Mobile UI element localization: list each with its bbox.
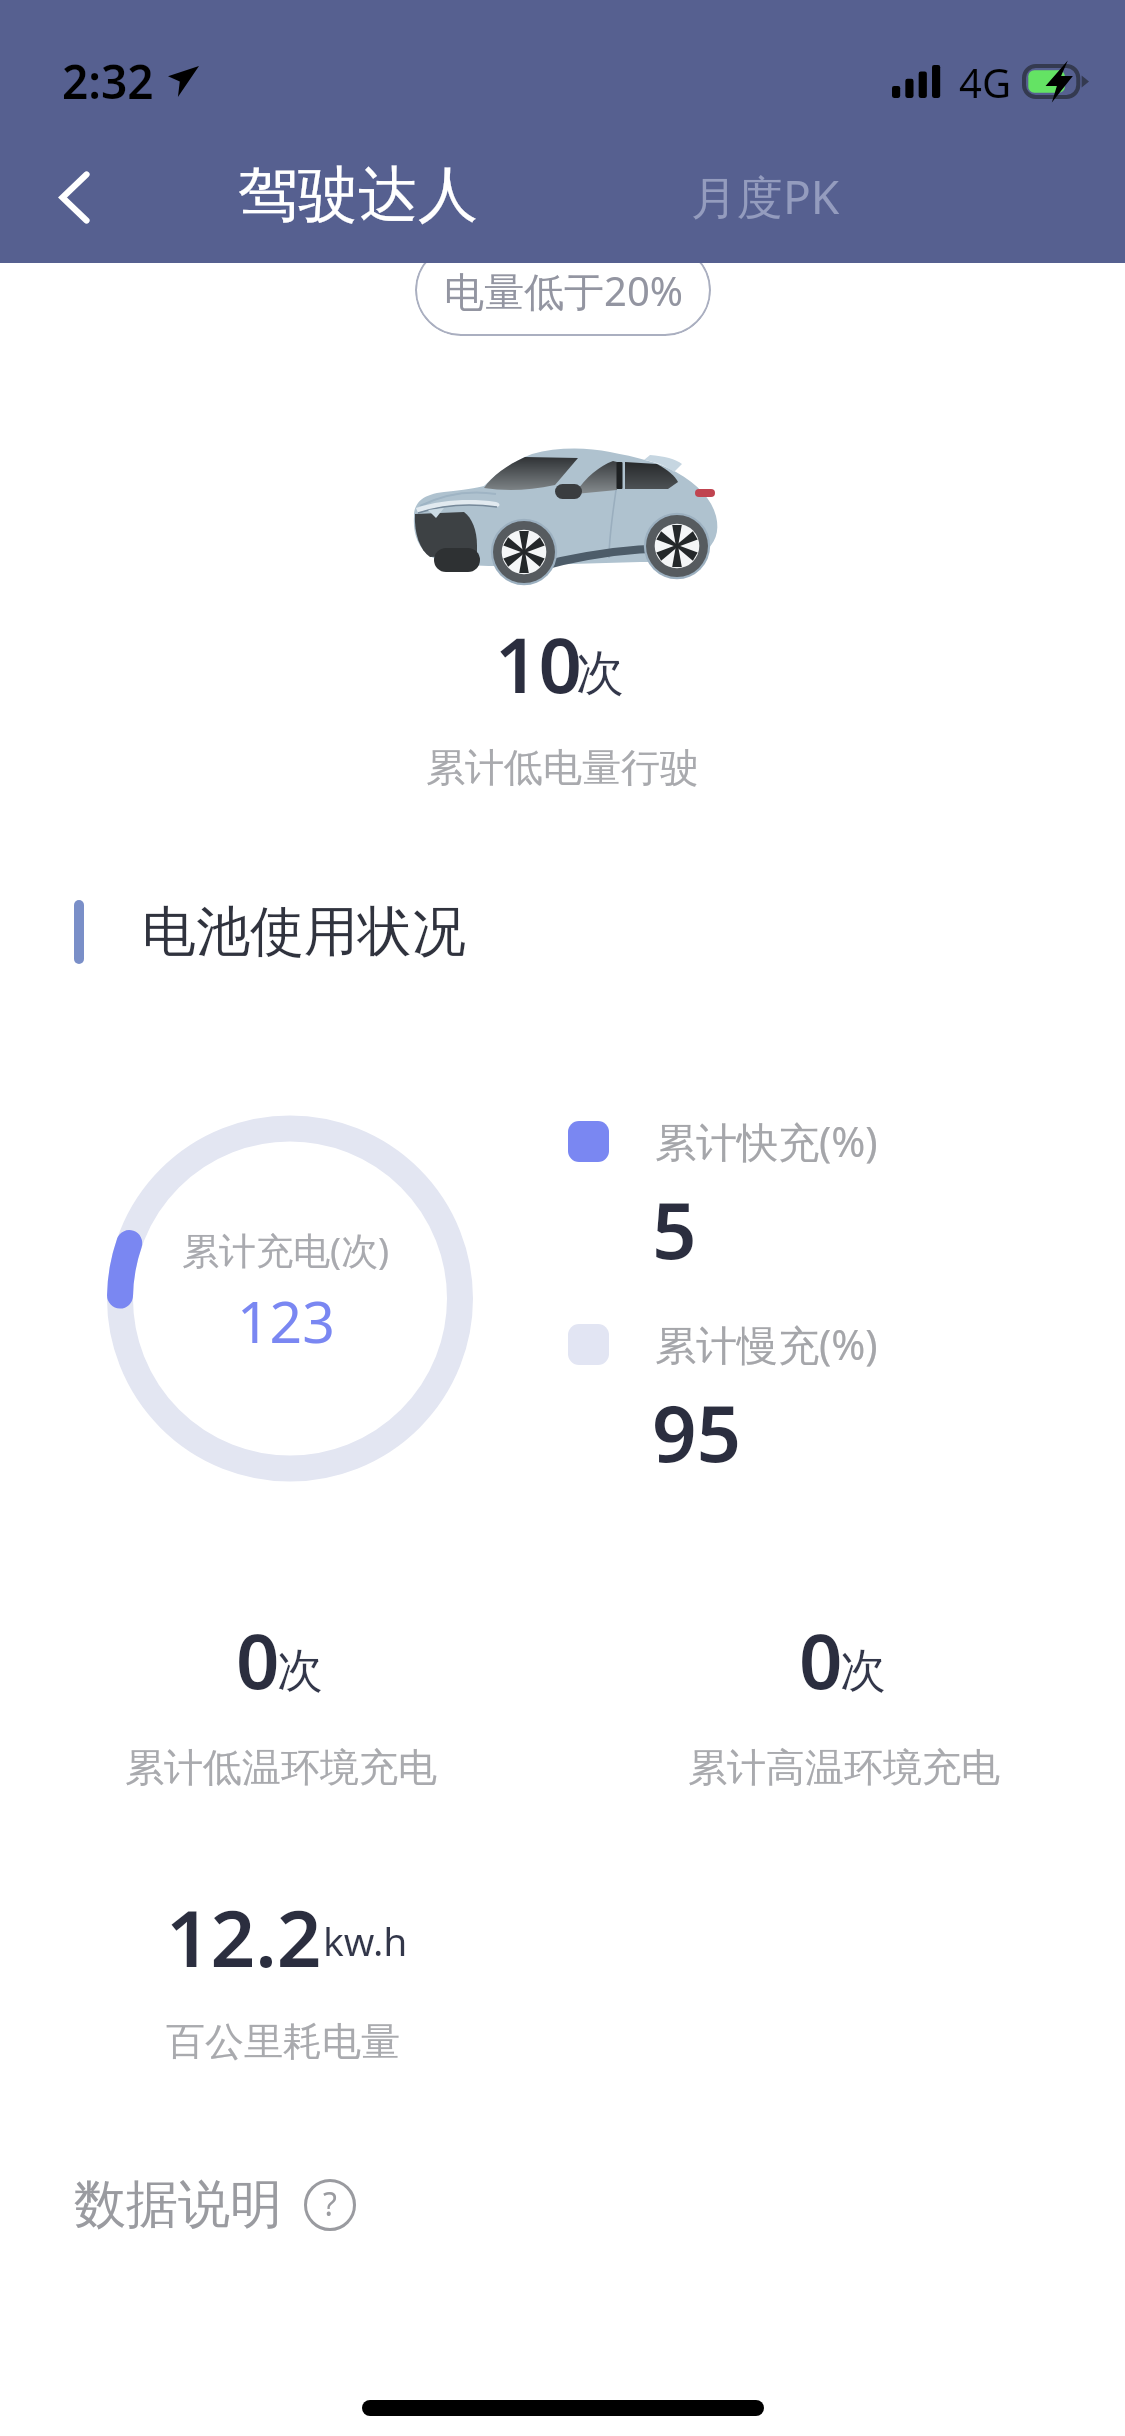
button[interactable]: 电量低于20% <box>415 244 711 336</box>
staticText: 95 <box>652 1379 742 1485</box>
staticText: 月度PK <box>691 165 840 228</box>
staticText: 百公里耗电量 <box>166 2017 400 2066</box>
staticText: 累计充电(次) <box>182 1224 390 1275</box>
staticText: 累计高温环境充电 <box>688 1743 1000 1792</box>
staticText: 0 <box>236 1608 280 1712</box>
button[interactable]: 月度PK <box>673 151 858 242</box>
staticText: 驾驶达人 <box>238 157 478 233</box>
staticText: 电量低于20% <box>444 263 683 318</box>
staticText: 次 <box>576 643 624 703</box>
button[interactable]: 数据说明 <box>74 2172 356 2238</box>
staticText: 次 <box>277 1642 323 1700</box>
staticText: 累计低电量行驶 <box>426 743 699 792</box>
staticText: 0 <box>799 1608 843 1712</box>
staticText: 4G <box>959 55 1011 109</box>
staticText: 10 <box>495 612 582 716</box>
staticText: 累计低温环境充电 <box>125 1743 437 1792</box>
button[interactable]: Back <box>26 149 122 245</box>
staticText: 5 <box>652 1176 697 1282</box>
staticText: 累计快充(%) <box>655 1113 878 1169</box>
staticText: 数据说明 <box>74 2172 282 2238</box>
staticText: 12.2 <box>166 1884 322 1990</box>
staticText: kw.h <box>323 1914 408 1967</box>
staticText: 电池使用状况 <box>142 898 466 966</box>
staticText: ? <box>323 2182 337 2226</box>
staticText: 次 <box>840 1642 886 1700</box>
staticText: 2:32 <box>62 50 154 113</box>
staticText: 累计慢充(%) <box>655 1316 878 1372</box>
staticText: 123 <box>237 1282 335 1360</box>
